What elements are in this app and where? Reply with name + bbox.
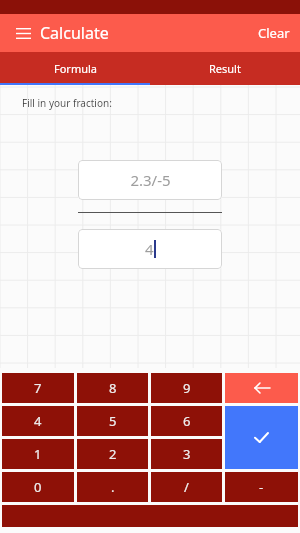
staticText: 4: [34, 412, 42, 430]
staticText: 1: [34, 445, 42, 463]
button[interactable]: Backspace: [225, 373, 298, 403]
button[interactable]: 1: [2, 439, 74, 469]
staticText: Fill in your fraction:: [22, 96, 112, 110]
staticText: 5: [109, 412, 117, 430]
staticText: Clear: [258, 24, 290, 42]
button[interactable]: Confirm: [225, 406, 298, 469]
staticText: 2: [109, 445, 117, 463]
button[interactable]: 4: [2, 406, 74, 436]
staticText: 2.3/-5: [130, 170, 171, 190]
button[interactable]: -: [225, 472, 298, 502]
button[interactable]: Open navigation menu: [8, 18, 38, 48]
button[interactable]: .: [77, 472, 148, 502]
staticText: 7: [34, 379, 42, 397]
button[interactable]: 9: [151, 373, 222, 403]
button[interactable]: Clear: [248, 14, 300, 52]
button[interactable]: 3: [151, 439, 222, 469]
staticText: .: [111, 478, 115, 496]
staticText: /: [184, 478, 189, 496]
button[interactable]: 6: [151, 406, 222, 436]
staticText: 9: [183, 379, 191, 397]
staticText: Result: [209, 61, 241, 76]
button[interactable]: 2: [77, 439, 148, 469]
button[interactable]: Result: [150, 52, 300, 85]
button[interactable]: 5: [77, 406, 148, 436]
button[interactable]: 2.3/-5: [78, 160, 222, 200]
staticText: 0: [34, 478, 42, 496]
staticText: 3: [183, 445, 191, 463]
staticText: 6: [183, 412, 191, 430]
button[interactable]: 8: [77, 373, 148, 403]
staticText: Formula: [54, 61, 97, 76]
button[interactable]: 4: [78, 229, 222, 269]
staticText: -: [259, 478, 264, 496]
button[interactable]: Formula: [0, 52, 150, 85]
button[interactable]: 7: [2, 373, 74, 403]
staticText: Calculate: [40, 22, 109, 44]
staticText: 4: [145, 239, 154, 259]
button[interactable]: /: [151, 472, 222, 502]
button[interactable]: 0: [2, 472, 74, 502]
staticText: 8: [109, 379, 117, 397]
